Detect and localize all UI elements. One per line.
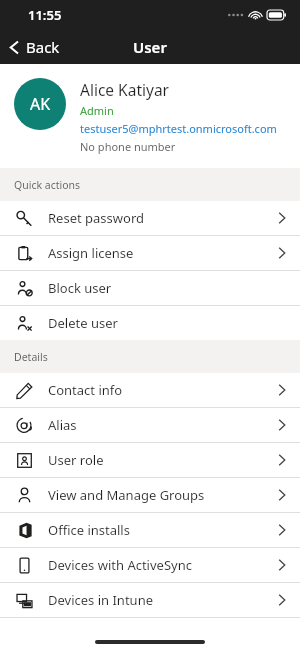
staticText: View and Manage Groups (48, 486, 278, 504)
staticText: Contact info (48, 381, 278, 399)
button[interactable]: Alias (0, 408, 300, 442)
button[interactable]: Reset password (0, 201, 300, 235)
staticText: 11:55 (28, 6, 62, 24)
button[interactable]: User role (0, 443, 300, 477)
staticText: User role (48, 451, 278, 469)
staticText: Alice Katiyar (80, 79, 170, 100)
staticText: Assign license (48, 244, 278, 262)
staticText: User (133, 37, 167, 57)
button[interactable]: Devices in Intune (0, 583, 300, 617)
staticText: Quick actions (14, 178, 81, 192)
button[interactable]: Back (0, 33, 70, 61)
button[interactable]: Delete user (0, 306, 300, 340)
button[interactable]: Block user (0, 271, 300, 305)
staticText: Alias (48, 416, 278, 434)
staticText: Office installs (48, 521, 278, 539)
staticText: Details (14, 350, 48, 364)
button[interactable]: View and Manage Groups (0, 478, 300, 512)
staticText: Admin (80, 103, 114, 118)
staticText: Delete user (48, 314, 286, 332)
button[interactable]: Devices with ActiveSync (0, 548, 300, 582)
button[interactable]: Contact info (0, 373, 300, 407)
staticText: Reset password (48, 209, 278, 227)
staticText: Devices with ActiveSync (48, 556, 278, 574)
staticText: No phone number (80, 139, 176, 154)
button[interactable]: Office installs (0, 513, 300, 547)
staticText: testuser5@mphrtest.onmicrosoft.com (80, 121, 277, 136)
staticText: Devices in Intune (48, 591, 278, 609)
staticText: Back (26, 37, 60, 57)
staticText: AK (30, 93, 51, 115)
button[interactable]: Assign license (0, 236, 300, 270)
staticText: Block user (48, 279, 286, 297)
